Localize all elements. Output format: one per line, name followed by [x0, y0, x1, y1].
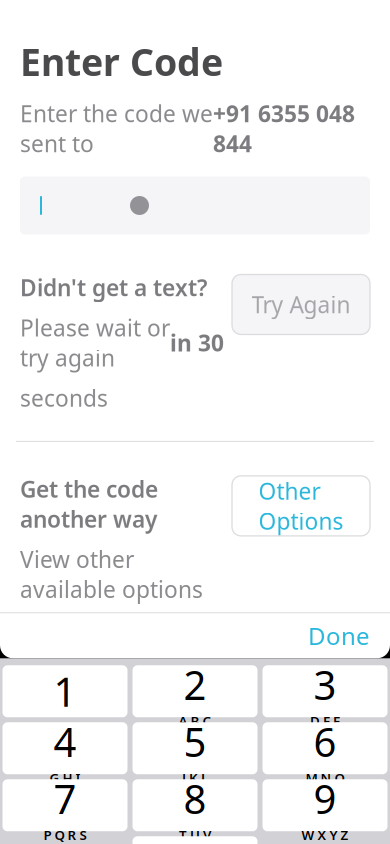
staticText: P Q R S	[43, 826, 86, 844]
staticText: Enter Code	[20, 37, 223, 86]
staticText: Enter the code we sent to	[20, 98, 213, 158]
staticText: G H I	[49, 769, 80, 787]
button[interactable]: 1	[2, 665, 127, 717]
staticText: T U V	[179, 826, 211, 844]
staticText: D E F	[310, 712, 340, 730]
button[interactable]: 5	[132, 722, 257, 774]
button[interactable]: Delete	[262, 836, 387, 844]
staticText: Try Again	[251, 289, 350, 319]
button[interactable]: 4	[2, 722, 127, 774]
button[interactable]: 8	[132, 779, 257, 831]
staticText: in 30	[170, 328, 224, 358]
staticText: 3	[313, 658, 336, 711]
staticText: 5	[183, 715, 206, 768]
staticText: Didn't get a text?	[20, 272, 207, 303]
button[interactable]: 2	[132, 665, 257, 717]
button[interactable]: 7	[2, 779, 127, 831]
staticText: 1	[53, 665, 76, 718]
staticText: View other available options	[20, 544, 203, 604]
staticText: A B C	[178, 712, 211, 730]
staticText: +91 6355 048 844	[213, 98, 355, 158]
staticText: Other Options	[258, 476, 343, 536]
staticText: seconds	[20, 383, 108, 413]
button[interactable]: 3	[262, 665, 387, 717]
staticText: Get the code another way	[20, 474, 158, 534]
staticText: W X Y Z	[301, 826, 348, 844]
staticText: 6	[313, 715, 336, 768]
staticText: M N O	[305, 769, 344, 787]
staticText: 0	[183, 836, 206, 844]
staticText: Please wait or try again	[20, 313, 170, 373]
button[interactable]: Done	[308, 620, 370, 652]
button[interactable]: Other Options	[232, 476, 370, 536]
staticText: J K L	[182, 769, 208, 787]
button[interactable]: 6	[262, 722, 387, 774]
staticText: 9	[313, 772, 336, 825]
staticText: Done	[308, 620, 370, 652]
staticText: 7	[53, 772, 76, 825]
button[interactable]: 9	[262, 779, 387, 831]
button[interactable]: Try Again	[232, 274, 370, 334]
staticText: 2	[183, 658, 206, 711]
staticText: 4	[53, 715, 76, 768]
button[interactable]: 0	[132, 836, 257, 844]
staticText: 8	[183, 772, 206, 825]
